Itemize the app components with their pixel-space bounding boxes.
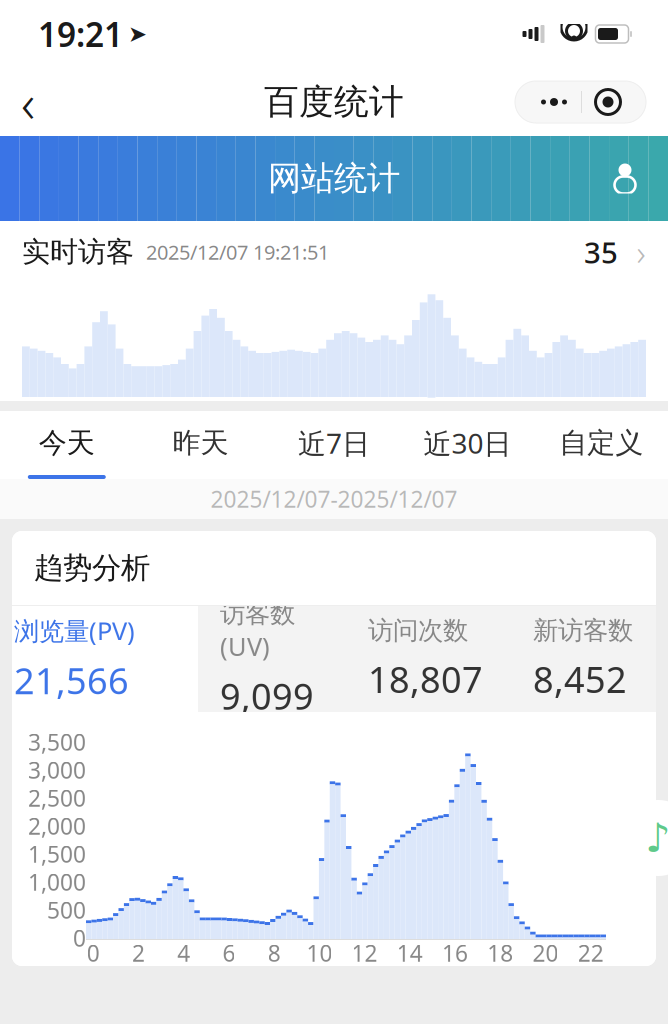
staticText: 35 <box>584 232 618 271</box>
button[interactable]: 访客数(UV) <box>198 606 346 712</box>
staticText: 1,000 <box>28 867 86 897</box>
staticText: 网站统计 <box>268 158 400 199</box>
staticText: 2,500 <box>28 783 86 813</box>
button[interactable]: 新访客数 <box>511 606 668 712</box>
staticText: 2,000 <box>28 811 86 841</box>
button[interactable]: Back <box>0 74 56 130</box>
staticText: 20 <box>532 938 558 968</box>
button[interactable]: 浏览量(PV) <box>0 606 198 712</box>
staticText: 3,500 <box>28 727 86 757</box>
button[interactable]: 访问次数 <box>346 606 511 712</box>
staticText: 8 <box>268 938 281 968</box>
staticText: 6 <box>222 938 235 968</box>
staticText: 昨天 <box>172 426 228 460</box>
button[interactable]: Music <box>620 800 668 876</box>
staticText: 1,500 <box>28 839 86 869</box>
button[interactable]: Account <box>600 153 650 203</box>
staticText: 2025/12/07-2025/12/07 <box>210 484 457 514</box>
staticText: 21,566 <box>14 656 129 704</box>
staticText: ♪ <box>645 815 668 861</box>
staticText: 18 <box>487 938 513 968</box>
staticText: 0 <box>87 938 100 968</box>
staticText: 新访客数 <box>533 615 633 646</box>
button[interactable]: More and Close <box>515 81 646 123</box>
staticText: 16 <box>442 938 468 968</box>
staticText: 今天 <box>39 426 95 460</box>
staticText: 500 <box>47 895 86 925</box>
staticText: 0 <box>73 923 86 953</box>
button[interactable]: 近30日 <box>401 411 534 479</box>
staticText: 10 <box>306 938 332 968</box>
button[interactable]: 近7日 <box>267 411 401 479</box>
staticText: 9,099 <box>220 672 314 720</box>
staticText: 实时访客 <box>22 235 134 269</box>
staticText: 2025/12/07 19:21:51 <box>146 239 329 265</box>
staticText: 3,000 <box>28 755 86 785</box>
button[interactable]: 自定义 <box>534 411 668 479</box>
staticText: 22 <box>578 938 604 968</box>
staticText: 12 <box>352 938 378 968</box>
staticText: 访客数(UV) <box>220 598 295 663</box>
button[interactable]: 今天 <box>0 411 134 479</box>
staticText: 访问次数 <box>368 615 468 646</box>
staticText: 浏览量(PV) <box>14 614 135 647</box>
staticText: 8,452 <box>533 655 627 703</box>
staticText: 趋势分析 <box>34 550 150 586</box>
staticText: ‹ <box>21 67 35 137</box>
button[interactable]: 实时访客 <box>0 221 668 283</box>
staticText: 近7日 <box>298 424 370 462</box>
staticText: › <box>636 229 645 275</box>
staticText: 19:21 <box>38 12 123 56</box>
staticText: 4 <box>177 938 190 968</box>
staticText: 近30日 <box>424 424 512 462</box>
staticText: 14 <box>397 938 423 968</box>
staticText: 18,807 <box>368 655 483 703</box>
staticText: ➤ <box>128 21 147 47</box>
staticText: 自定义 <box>559 426 643 460</box>
staticText: 百度统计 <box>264 81 404 123</box>
staticText: 2 <box>132 938 145 968</box>
button[interactable]: 昨天 <box>134 411 267 479</box>
